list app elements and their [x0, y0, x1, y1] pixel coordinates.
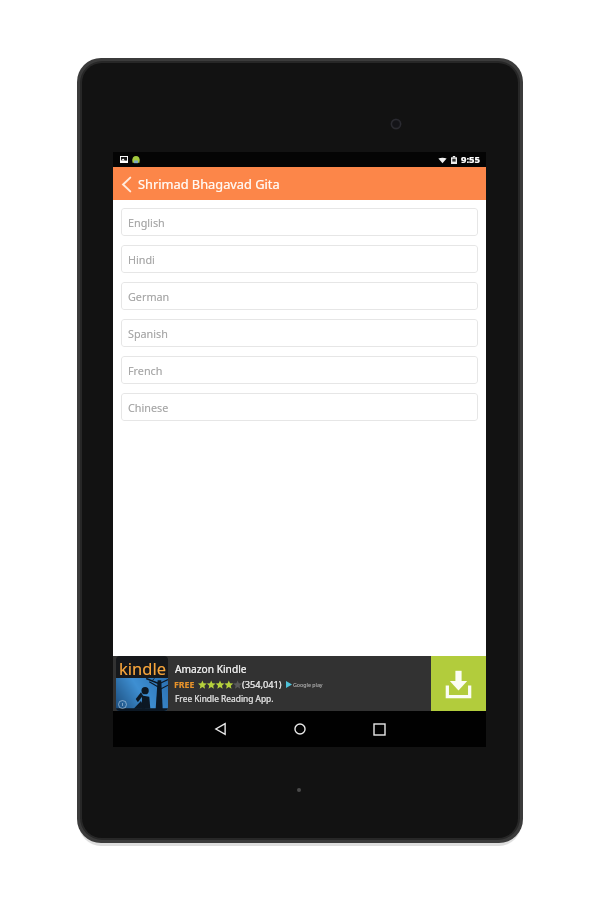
button[interactable]: Spanish: [121, 319, 478, 347]
staticText: German: [128, 289, 170, 304]
button[interactable]: Back: [118, 171, 135, 197]
staticText: Free Kindle Reading App.: [175, 693, 274, 704]
staticText: kindle: [119, 657, 166, 679]
button[interactable]: German: [121, 282, 478, 310]
staticText: English: [128, 215, 165, 230]
button[interactable]: Home: [282, 711, 318, 747]
staticText: FREE: [174, 679, 195, 691]
button[interactable]: kindle: [113, 656, 486, 711]
button[interactable]: Chinese: [121, 393, 478, 421]
staticText: Shrimad Bhagavad Gita: [138, 175, 280, 192]
button[interactable]: French: [121, 356, 478, 384]
staticText: (354,041): [242, 678, 282, 691]
staticText: 9:55: [461, 153, 480, 166]
staticText: Chinese: [128, 400, 169, 415]
staticText: Spanish: [128, 326, 168, 341]
staticText: French: [128, 363, 163, 378]
button[interactable]: Recents: [361, 711, 397, 747]
staticText: Google play: [293, 681, 323, 688]
button[interactable]: Hindi: [121, 245, 478, 273]
staticText: Amazon Kindle: [175, 662, 247, 676]
button[interactable]: English: [121, 208, 478, 236]
button[interactable]: Install: [431, 656, 486, 711]
button[interactable]: Back: [202, 711, 238, 747]
staticText: Hindi: [128, 252, 155, 267]
button[interactable]: Back: [113, 167, 486, 200]
